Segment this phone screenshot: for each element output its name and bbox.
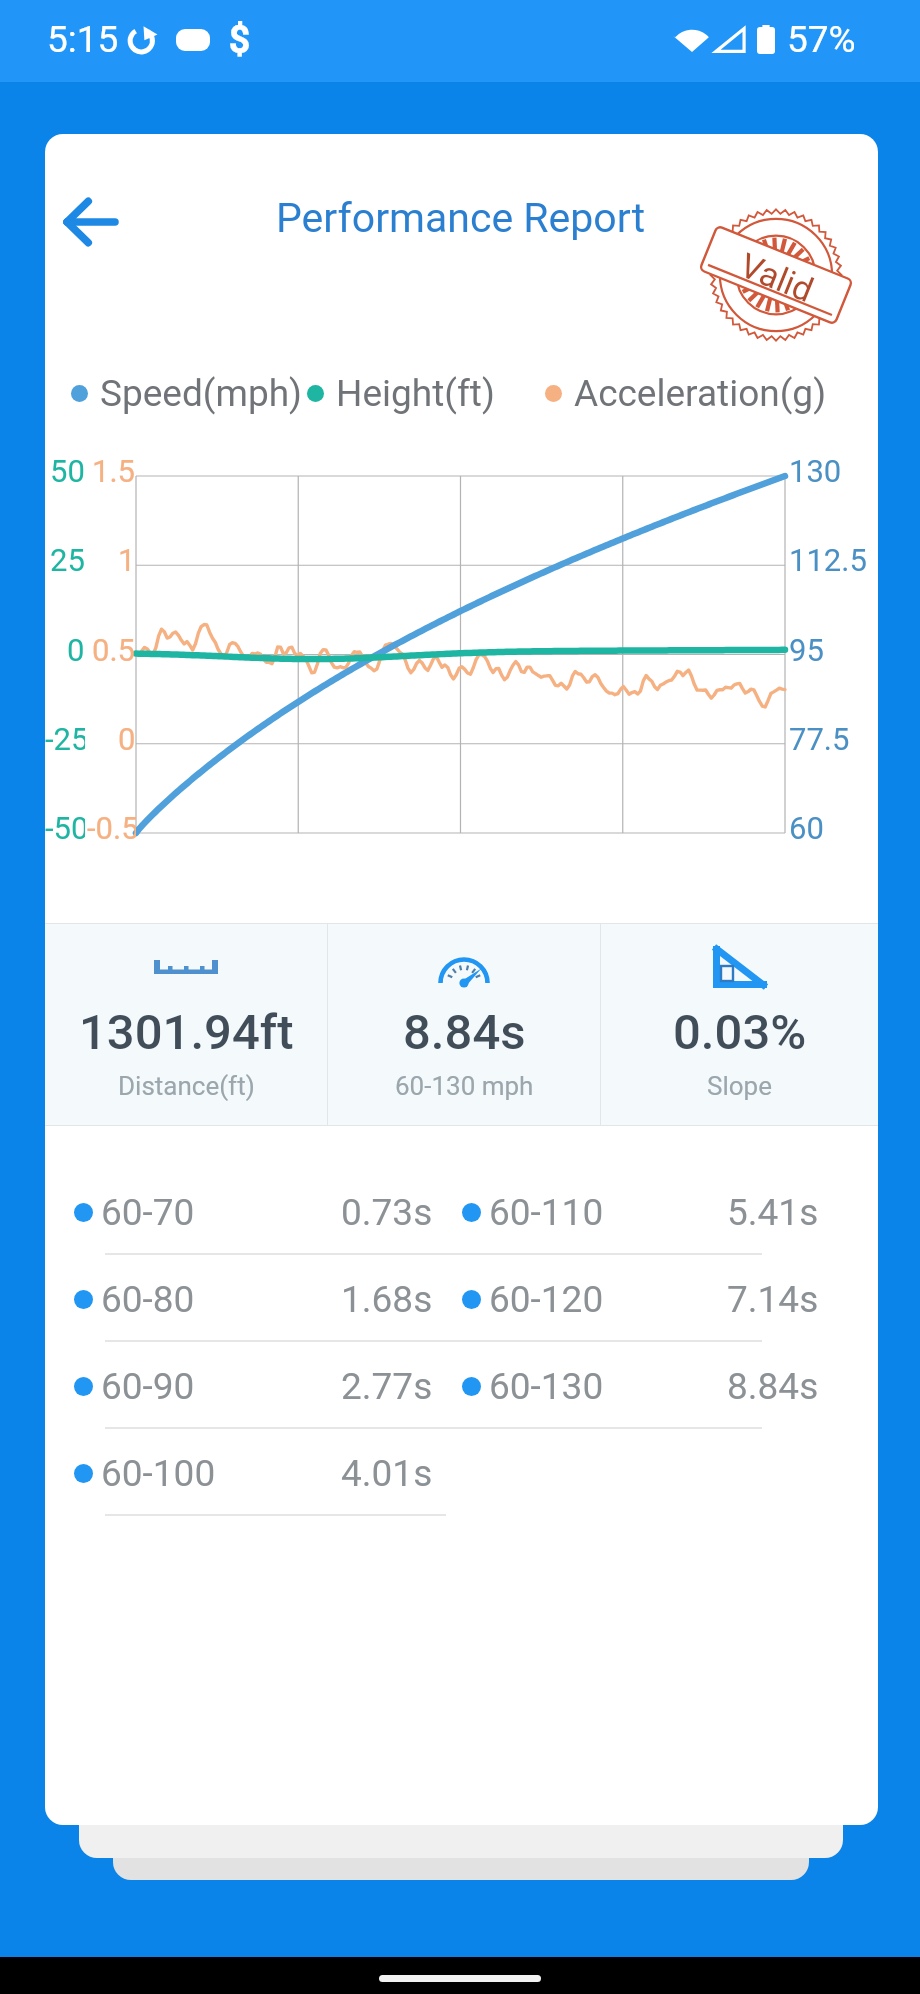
button[interactable]: 60-130 xyxy=(446,1346,819,1433)
button[interactable]: 60-90 xyxy=(74,1346,446,1433)
staticText: -50 xyxy=(45,810,85,846)
button[interactable]: Back xyxy=(45,174,145,270)
staticText: 0.03% xyxy=(673,1004,807,1061)
staticText: 60-70 xyxy=(101,1191,195,1234)
staticText: Distance(ft) xyxy=(118,1071,255,1101)
staticText: 2.77s xyxy=(341,1365,433,1408)
staticText: 1.68s xyxy=(341,1278,433,1321)
staticText: 60-90 xyxy=(101,1365,195,1408)
staticText: 0.73s xyxy=(341,1191,433,1234)
staticText: -0.5 xyxy=(87,810,136,846)
staticText: 0.5 xyxy=(92,632,136,668)
staticText: Speed(mph) xyxy=(100,372,303,415)
staticText: 50 xyxy=(50,453,85,489)
staticText: 130 xyxy=(789,453,842,489)
button[interactable]: 60-120 xyxy=(446,1259,819,1346)
staticText: Height(ft) xyxy=(336,372,495,415)
staticText: -25 xyxy=(45,721,85,757)
button[interactable]: 60-80 xyxy=(74,1259,446,1346)
staticText: 1 xyxy=(118,542,136,578)
staticText: 60-130 xyxy=(489,1365,604,1408)
staticText: 60-100 xyxy=(101,1452,216,1495)
button[interactable]: 60-110 xyxy=(446,1172,819,1259)
staticText: 4.01s xyxy=(341,1452,433,1495)
button[interactable]: 1301.94ft xyxy=(45,924,327,1125)
staticText: 8.84s xyxy=(403,1004,526,1061)
staticText: 60-120 xyxy=(489,1278,604,1321)
staticText: 7.14s xyxy=(727,1278,819,1321)
staticText: Acceleration(g) xyxy=(574,372,827,415)
staticText: Valid xyxy=(734,245,820,310)
staticText: $ xyxy=(229,18,251,61)
staticText: 0 xyxy=(67,632,85,668)
staticText: 60-130 mph xyxy=(395,1071,534,1101)
staticText: 5.41s xyxy=(727,1191,819,1234)
staticText: Slope xyxy=(707,1071,772,1101)
staticText: 95 xyxy=(789,632,824,668)
staticText: 60-110 xyxy=(489,1191,604,1234)
staticText: 57% xyxy=(787,18,856,61)
staticText: 77.5 xyxy=(789,721,850,757)
button[interactable]: 8.84s xyxy=(328,924,600,1125)
staticText: Performance Report xyxy=(276,194,646,242)
other: Valid stamp xyxy=(696,195,856,355)
staticText: 5:15 xyxy=(47,18,119,61)
button[interactable]: 0.03% xyxy=(601,924,878,1125)
staticText: 60-80 xyxy=(101,1278,195,1321)
staticText: 0 xyxy=(118,721,136,757)
staticText: 8.84s xyxy=(727,1365,819,1408)
button[interactable]: 60-100 xyxy=(74,1433,446,1520)
staticText: 25 xyxy=(50,542,85,578)
staticText: 112.5 xyxy=(789,542,867,578)
button[interactable]: 60-70 xyxy=(74,1172,446,1259)
staticText: 60 xyxy=(789,810,824,846)
staticText: 1.5 xyxy=(92,453,136,489)
staticText: 1301.94ft xyxy=(79,1004,294,1061)
